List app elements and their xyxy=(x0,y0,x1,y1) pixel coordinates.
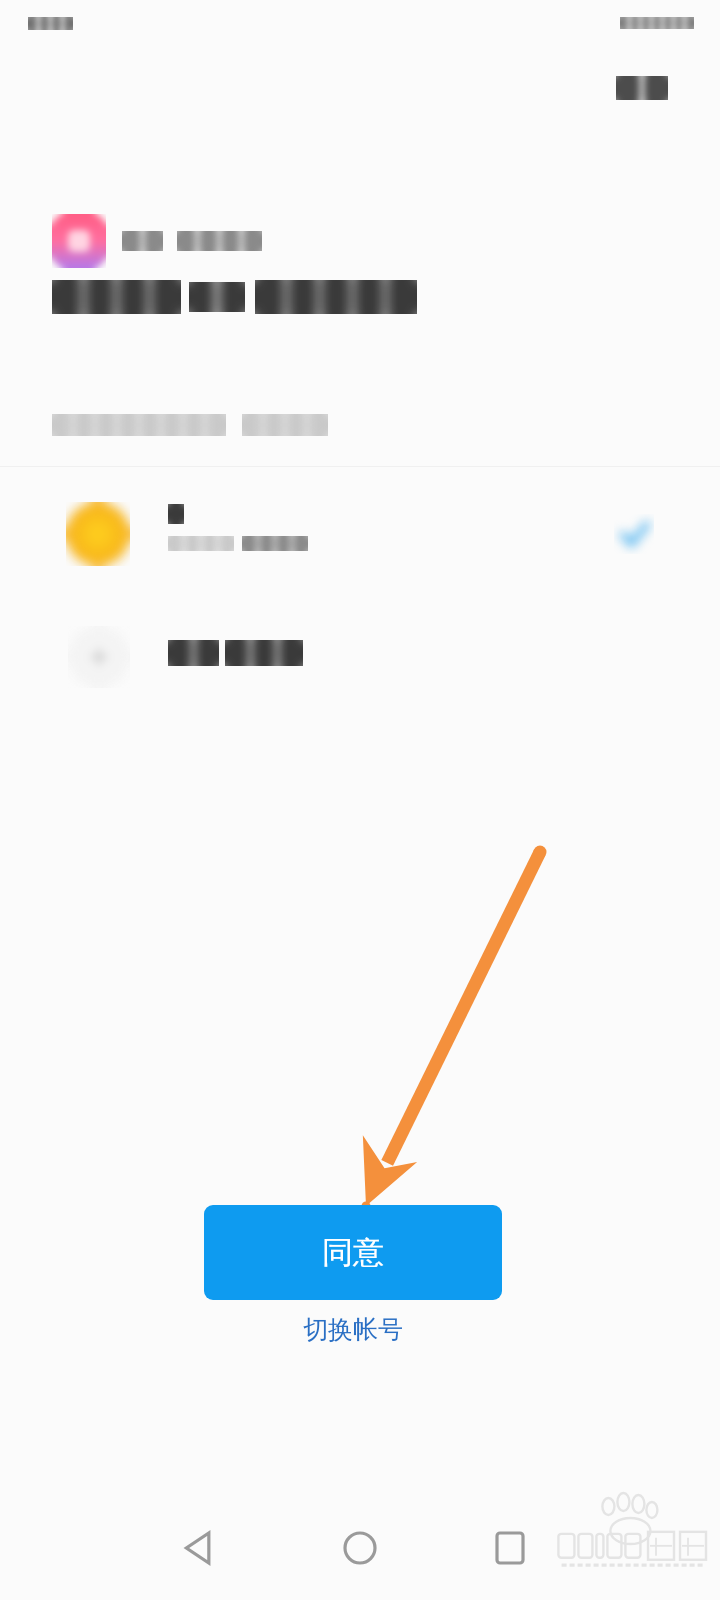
button[interactable]: 取消 xyxy=(600,66,684,110)
button[interactable]: Recent apps xyxy=(470,1508,550,1588)
button[interactable]: 同意 xyxy=(204,1205,502,1300)
button[interactable]: 切换帐号 xyxy=(272,1305,434,1353)
staticText: 同意 xyxy=(322,1233,384,1272)
button[interactable] xyxy=(0,612,720,704)
staticText: 切换帐号 xyxy=(303,1314,403,1345)
button[interactable]: Home xyxy=(320,1508,400,1588)
button[interactable] xyxy=(0,486,720,584)
button[interactable]: Back xyxy=(160,1508,240,1588)
